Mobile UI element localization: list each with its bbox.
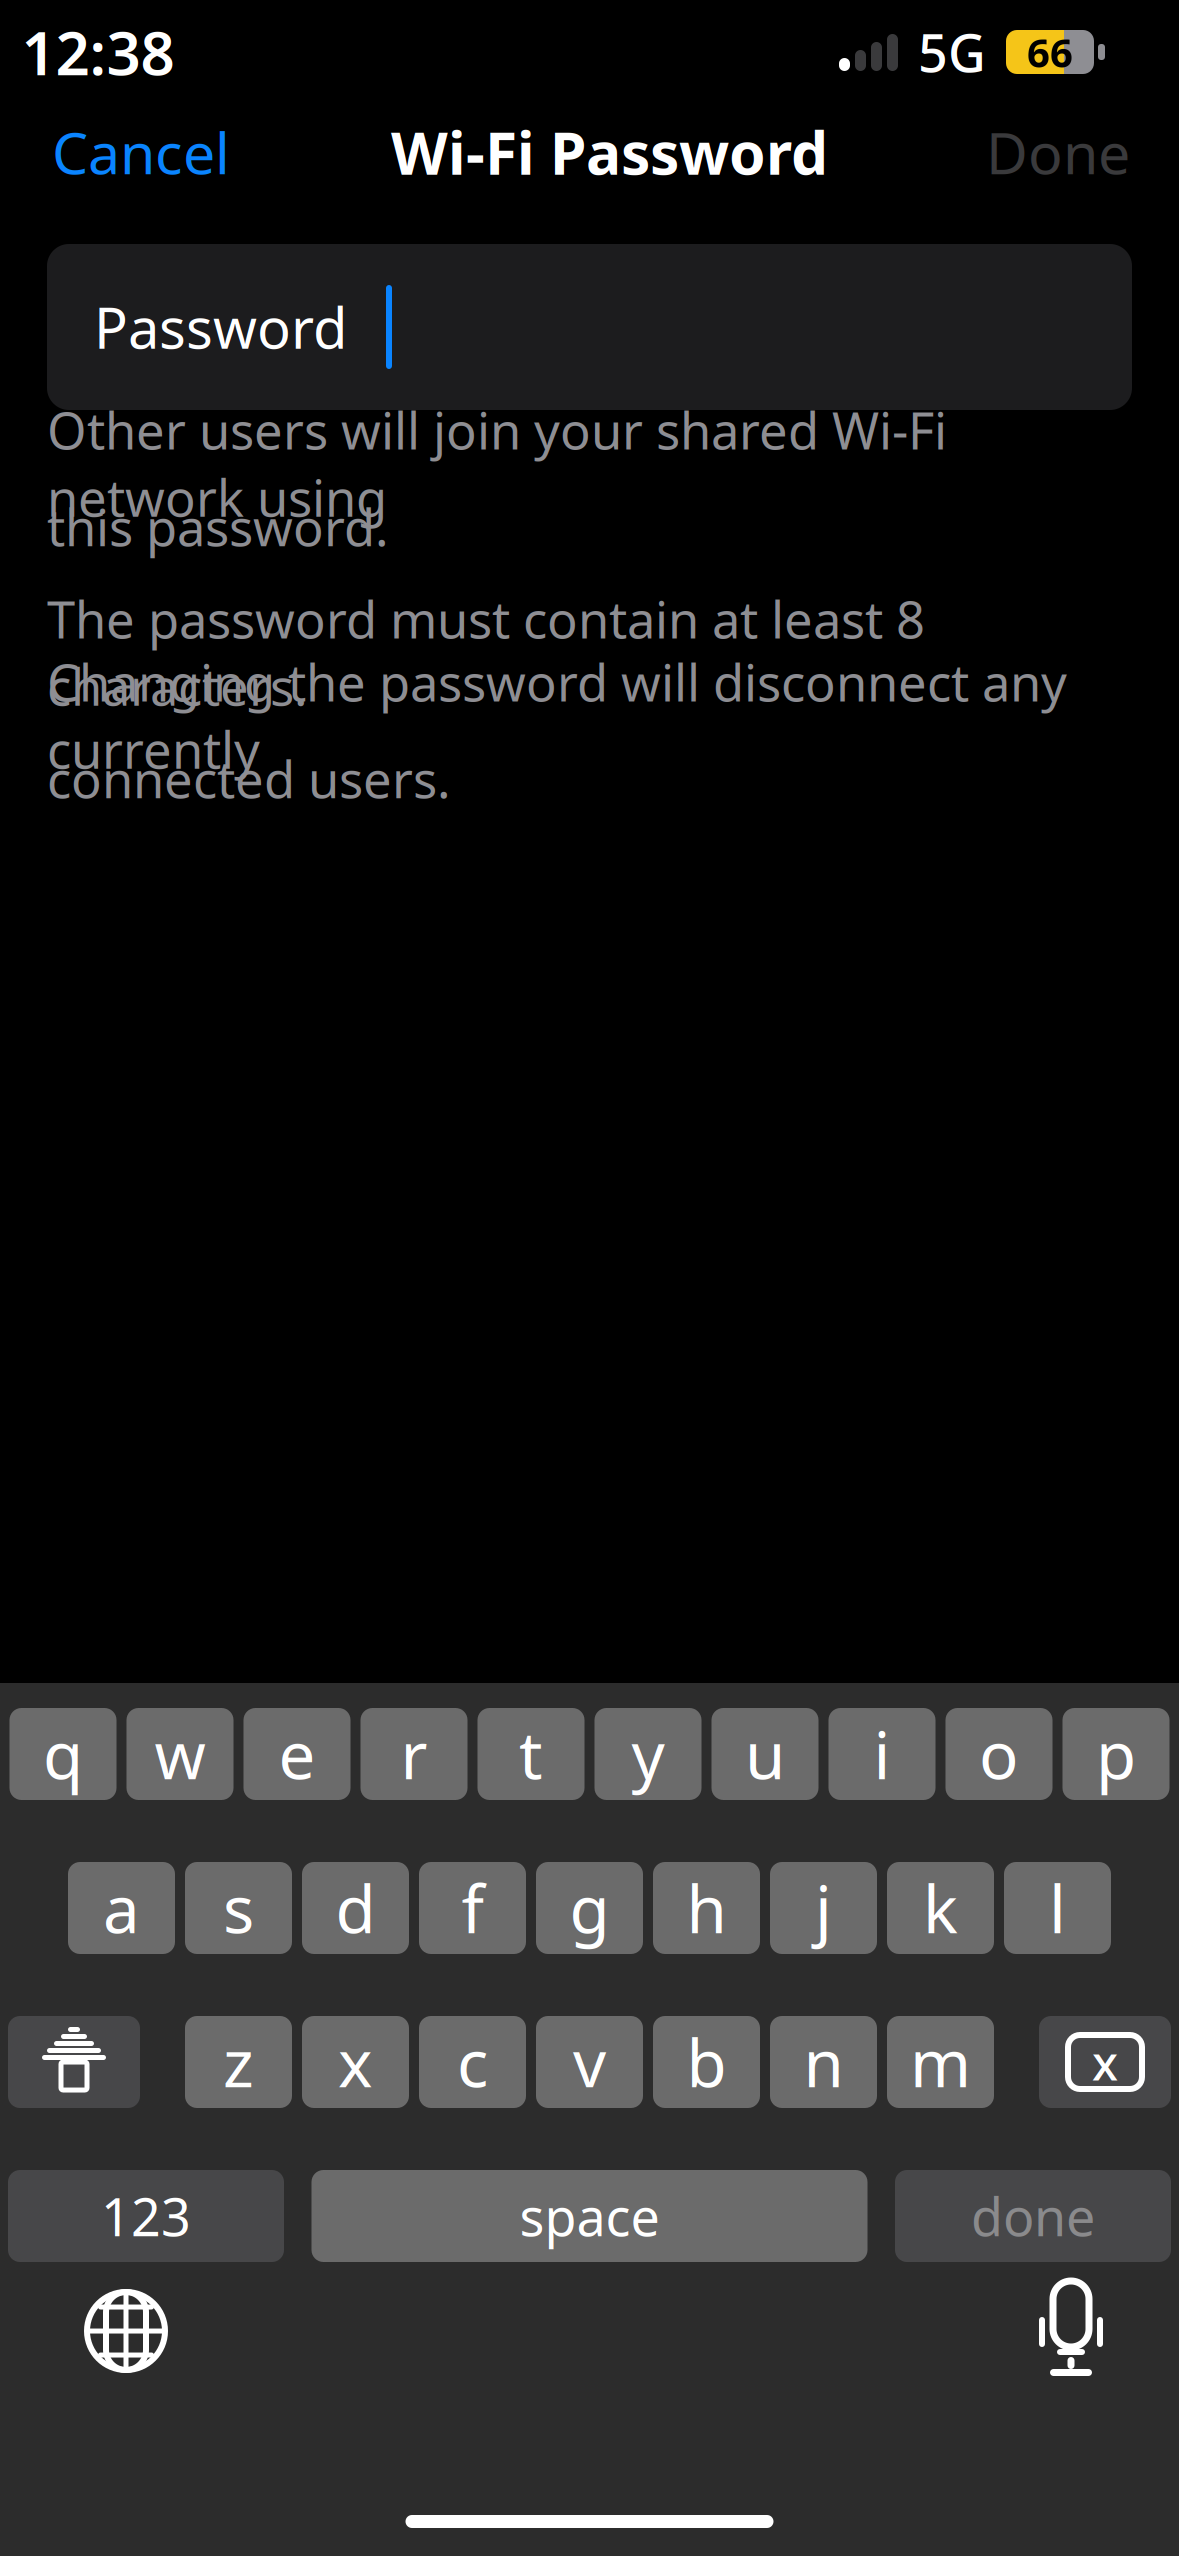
staticText: done bbox=[971, 2181, 1095, 2251]
button[interactable]: q bbox=[9, 1708, 116, 1800]
staticText: u bbox=[745, 1711, 785, 1797]
button[interactable]: l bbox=[1004, 1862, 1111, 1954]
button[interactable]: h bbox=[653, 1862, 760, 1954]
button[interactable]: d bbox=[302, 1862, 409, 1954]
staticText: Other users will join your shared Wi-Fi … bbox=[47, 396, 947, 531]
staticText: c bbox=[457, 2019, 488, 2105]
button[interactable]: r bbox=[360, 1708, 467, 1800]
staticText: k bbox=[923, 1865, 958, 1951]
staticText: f bbox=[461, 1865, 483, 1951]
staticText: s bbox=[223, 1865, 254, 1951]
staticText: 66 bbox=[1027, 25, 1073, 78]
staticText: y bbox=[631, 1711, 664, 1797]
staticText: t bbox=[519, 1711, 543, 1797]
button[interactable]: o bbox=[945, 1708, 1052, 1800]
button[interactable]: x bbox=[302, 2016, 409, 2108]
button[interactable]: i bbox=[828, 1708, 935, 1800]
button[interactable]: f bbox=[419, 1862, 526, 1954]
staticText: e bbox=[278, 1711, 315, 1797]
button[interactable]: v bbox=[536, 2016, 643, 2108]
button[interactable]: a bbox=[68, 1862, 175, 1954]
staticText: d bbox=[335, 1865, 375, 1951]
button[interactable]: s bbox=[185, 1862, 292, 1954]
button[interactable]: Shift bbox=[8, 2016, 140, 2108]
button[interactable]: w bbox=[126, 1708, 233, 1800]
staticText: n bbox=[803, 2019, 843, 2105]
button[interactable]: n bbox=[770, 2016, 877, 2108]
button[interactable]: Next keyboard bbox=[60, 2275, 192, 2387]
button[interactable]: Delete bbox=[1039, 2016, 1171, 2108]
staticText: a bbox=[103, 1865, 140, 1951]
button[interactable]: j bbox=[770, 1862, 877, 1954]
button[interactable]: done bbox=[895, 2170, 1171, 2262]
button[interactable]: u bbox=[711, 1708, 818, 1800]
button[interactable]: g bbox=[536, 1862, 643, 1954]
staticText: Wi-Fi Password bbox=[391, 113, 828, 191]
button[interactable]: k bbox=[887, 1862, 994, 1954]
staticText: connected users. bbox=[47, 745, 451, 812]
staticText: this password. bbox=[47, 493, 389, 560]
staticText: q bbox=[43, 1711, 83, 1797]
staticText: g bbox=[569, 1865, 609, 1951]
button[interactable]: Dictation bbox=[1005, 2275, 1137, 2387]
staticText: The password must contain at least 8 cha… bbox=[47, 585, 925, 720]
staticText: j bbox=[815, 1865, 832, 1951]
staticText: x bbox=[338, 2019, 373, 2105]
button[interactable]: Cancel bbox=[0, 104, 282, 200]
staticText: w bbox=[154, 1711, 205, 1797]
button[interactable]: 123 bbox=[8, 2170, 284, 2262]
staticText: r bbox=[400, 1711, 427, 1797]
staticText: space bbox=[519, 2181, 659, 2251]
staticText: Cancel bbox=[52, 114, 230, 190]
staticText: 123 bbox=[101, 2181, 191, 2251]
staticText: l bbox=[1049, 1865, 1066, 1951]
staticText: z bbox=[223, 2019, 254, 2105]
staticText: 12:38 bbox=[21, 12, 174, 92]
staticText: i bbox=[873, 1711, 890, 1797]
staticText: o bbox=[979, 1711, 1019, 1797]
staticText: x bbox=[1092, 2030, 1118, 2094]
button[interactable]: space bbox=[311, 2170, 867, 2262]
staticText: Changing the password will disconnect an… bbox=[47, 648, 1067, 783]
staticText: h bbox=[686, 1865, 726, 1951]
staticText: b bbox=[686, 2019, 726, 2105]
staticText: Password bbox=[94, 290, 347, 364]
button[interactable]: z bbox=[185, 2016, 292, 2108]
button[interactable]: Password bbox=[47, 244, 1132, 410]
staticText: v bbox=[573, 2019, 606, 2105]
button[interactable]: c bbox=[419, 2016, 526, 2108]
button[interactable]: b bbox=[653, 2016, 760, 2108]
button[interactable]: Done bbox=[937, 104, 1179, 200]
button[interactable]: t bbox=[477, 1708, 584, 1800]
staticText: 5G bbox=[918, 17, 986, 87]
button[interactable]: y bbox=[594, 1708, 701, 1800]
staticText: Done bbox=[986, 114, 1130, 190]
button[interactable]: p bbox=[1062, 1708, 1169, 1800]
button[interactable]: e bbox=[243, 1708, 350, 1800]
staticText: m bbox=[910, 2019, 971, 2105]
staticText: p bbox=[1096, 1711, 1136, 1797]
button[interactable]: m bbox=[887, 2016, 994, 2108]
